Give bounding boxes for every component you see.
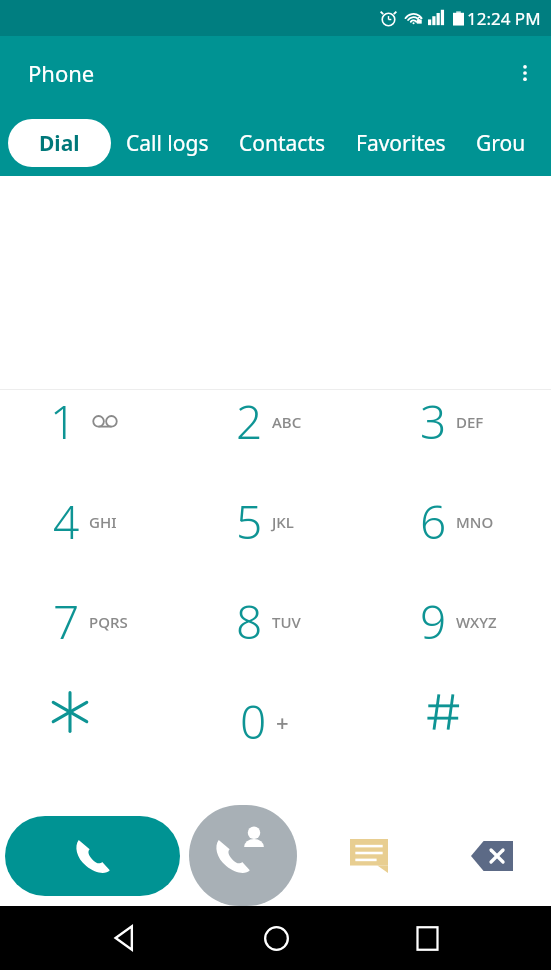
- staticText: MNO: [456, 512, 494, 532]
- button[interactable]: 3: [367, 390, 551, 453]
- button[interactable]: Back: [97, 911, 151, 965]
- button[interactable]: 2: [183, 390, 367, 453]
- staticText: Phone: [28, 58, 95, 88]
- button[interactable]: Favorites: [341, 119, 461, 168]
- button[interactable]: Contacts: [224, 119, 341, 168]
- button[interactable]: [367, 690, 551, 734]
- staticText: 7: [53, 590, 80, 653]
- button[interactable]: 6: [367, 490, 551, 553]
- staticText: JKL: [272, 512, 294, 532]
- button[interactable]: 0: [183, 690, 367, 753]
- staticText: Call logs: [126, 129, 209, 158]
- staticText: 12:24 PM: [467, 7, 541, 30]
- staticText: Dial: [39, 129, 80, 158]
- staticText: 9: [420, 590, 447, 653]
- staticText: Favorites: [356, 129, 446, 158]
- staticText: WXYZ: [456, 612, 497, 632]
- staticText: 6: [420, 490, 447, 553]
- button[interactable]: Recent apps: [400, 911, 454, 965]
- staticText: 2: [236, 390, 263, 453]
- button[interactable]: [0, 690, 183, 734]
- staticText: Group: [476, 129, 536, 158]
- staticText: DEF: [456, 412, 484, 432]
- staticText: TUV: [272, 612, 301, 632]
- button[interactable]: More options: [499, 47, 551, 99]
- staticText: 1: [50, 390, 77, 453]
- button[interactable]: 7: [0, 590, 183, 653]
- button[interactable]: Call: [5, 816, 180, 896]
- button[interactable]: Call contact: [189, 805, 297, 906]
- staticText: 4: [53, 490, 80, 553]
- button[interactable]: Dial: [8, 119, 111, 167]
- button[interactable]: 8: [183, 590, 367, 653]
- staticText: GHI: [89, 512, 117, 532]
- button[interactable]: 9: [367, 590, 551, 653]
- staticText: PQRS: [89, 612, 128, 632]
- button[interactable]: Send message: [339, 826, 399, 886]
- button[interactable]: 5: [183, 490, 367, 553]
- staticText: 0: [240, 690, 267, 753]
- staticText: +: [276, 707, 289, 737]
- button[interactable]: Home: [249, 911, 303, 965]
- button[interactable]: Group: [461, 119, 551, 168]
- button[interactable]: 4: [0, 490, 183, 553]
- button[interactable]: Backspace: [462, 826, 522, 886]
- staticText: 5: [236, 490, 263, 553]
- staticText: Contacts: [239, 129, 326, 158]
- staticText: 8: [236, 590, 263, 653]
- button[interactable]: Call logs: [111, 119, 224, 168]
- staticText: ABC: [272, 412, 302, 432]
- staticText: 3: [420, 390, 447, 453]
- button[interactable]: 1: [0, 390, 183, 453]
